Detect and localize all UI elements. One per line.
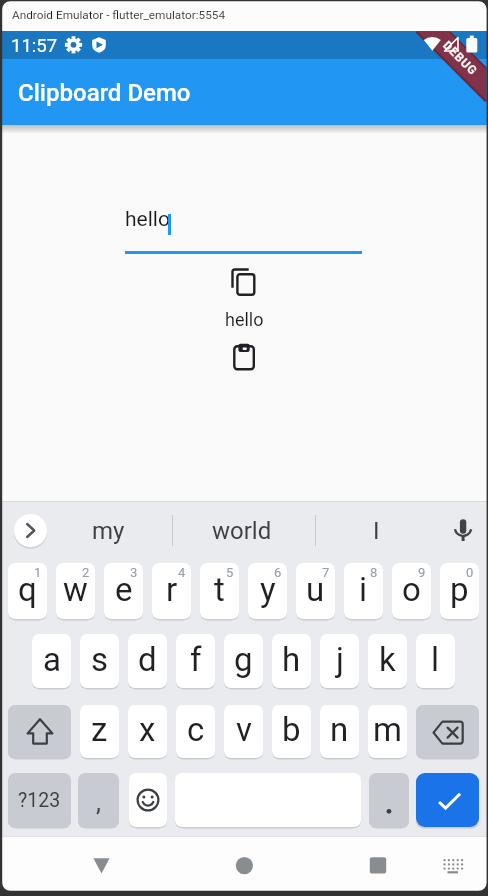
- staticText: i: [359, 570, 368, 609]
- staticText: u: [306, 570, 325, 609]
- button[interactable]: I: [330, 516, 423, 546]
- button[interactable]: o: [392, 563, 431, 619]
- staticText: s: [91, 640, 109, 679]
- staticText: 1: [34, 565, 42, 580]
- button[interactable]: my: [60, 516, 156, 546]
- button[interactable]: q: [8, 563, 47, 619]
- staticText: n: [330, 710, 349, 749]
- button[interactable]: [416, 705, 479, 758]
- button[interactable]: m: [368, 705, 407, 758]
- staticText: Clipboard Demo: [18, 79, 191, 107]
- staticText: z: [91, 710, 108, 749]
- button[interactable]: e: [104, 563, 143, 619]
- staticText: o: [402, 570, 421, 609]
- button[interactable]: [77, 841, 125, 887]
- button[interactable]: w: [56, 563, 95, 619]
- staticText: ,: [96, 788, 101, 817]
- staticText: l: [431, 640, 440, 679]
- staticText: 0: [466, 565, 474, 580]
- staticText: 9: [418, 565, 426, 580]
- staticText: k: [379, 640, 396, 679]
- staticText: 7: [322, 565, 330, 580]
- button[interactable]: c: [176, 705, 215, 758]
- button[interactable]: n: [320, 705, 359, 758]
- staticText: m: [373, 710, 402, 749]
- button[interactable]: k: [368, 634, 407, 688]
- staticText: 6: [274, 565, 282, 580]
- staticText: y: [260, 570, 276, 609]
- button[interactable]: a: [32, 634, 71, 688]
- button[interactable]: [125, 203, 362, 254]
- button[interactable]: l: [416, 634, 455, 688]
- button[interactable]: s: [80, 634, 119, 688]
- button[interactable]: ,: [78, 773, 119, 827]
- button[interactable]: i: [344, 563, 383, 619]
- staticText: hello: [225, 309, 264, 330]
- staticText: world: [212, 517, 272, 545]
- staticText: a: [43, 640, 61, 679]
- button[interactable]: [448, 512, 478, 546]
- staticText: I: [373, 517, 380, 545]
- button[interactable]: [129, 773, 167, 827]
- button[interactable]: b: [272, 705, 311, 758]
- staticText: my: [92, 517, 125, 545]
- staticText: f: [190, 640, 202, 679]
- button[interactable]: t: [200, 563, 239, 619]
- button[interactable]: z: [80, 705, 119, 758]
- button[interactable]: [220, 841, 268, 887]
- staticText: 11:57: [11, 35, 58, 57]
- button[interactable]: y: [248, 563, 287, 619]
- button[interactable]: p: [440, 563, 479, 619]
- staticText: hello: [125, 207, 170, 232]
- staticText: d: [138, 640, 157, 679]
- button[interactable]: world: [184, 516, 300, 546]
- staticText: q: [18, 570, 37, 609]
- button[interactable]: ?123: [8, 773, 71, 827]
- staticText: t: [214, 570, 225, 609]
- staticText: 4: [178, 565, 186, 580]
- staticText: Android Emulator - flutter_emulator:5554: [12, 8, 226, 22]
- staticText: v: [236, 710, 252, 749]
- staticText: 3: [130, 565, 138, 580]
- button[interactable]: [354, 841, 402, 887]
- button[interactable]: [369, 773, 409, 827]
- button[interactable]: d: [128, 634, 167, 688]
- staticText: b: [282, 710, 301, 749]
- staticText: r: [166, 570, 178, 609]
- button[interactable]: v: [224, 705, 263, 758]
- staticText: c: [187, 710, 205, 749]
- staticText: h: [282, 640, 301, 679]
- button[interactable]: [228, 265, 258, 299]
- button[interactable]: [230, 340, 258, 372]
- button[interactable]: [14, 514, 47, 547]
- staticText: g: [234, 640, 253, 679]
- staticText: e: [115, 570, 133, 609]
- button[interactable]: r: [152, 563, 191, 619]
- staticText: x: [139, 710, 156, 749]
- button[interactable]: [8, 705, 71, 758]
- staticText: w: [63, 570, 88, 609]
- button[interactable]: [416, 773, 479, 827]
- button[interactable]: j: [320, 634, 359, 688]
- button[interactable]: f: [176, 634, 215, 688]
- staticText: j: [336, 640, 344, 679]
- staticText: 2: [82, 565, 90, 580]
- button[interactable]: h: [272, 634, 311, 688]
- staticText: ?123: [18, 789, 61, 812]
- staticText: 8: [370, 565, 378, 580]
- button[interactable]: g: [224, 634, 263, 688]
- staticText: p: [450, 570, 469, 609]
- staticText: DEBUG: [440, 38, 480, 78]
- button[interactable]: u: [296, 563, 335, 619]
- button[interactable]: x: [128, 705, 167, 758]
- staticText: 5: [226, 565, 234, 580]
